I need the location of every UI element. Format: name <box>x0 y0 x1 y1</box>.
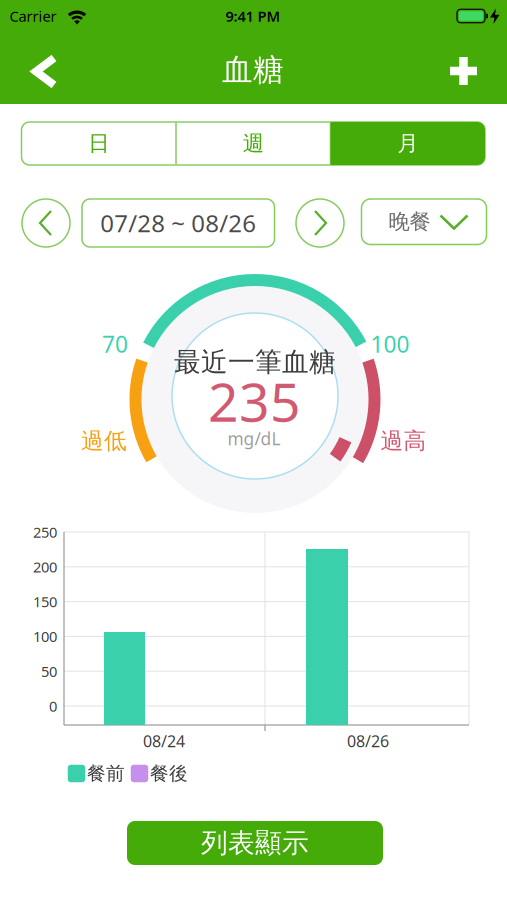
button[interactable] <box>22 199 70 247</box>
button[interactable] <box>450 57 477 85</box>
staticText: 235 <box>208 366 301 436</box>
staticText: 過高 <box>380 427 426 455</box>
staticText: 100 <box>370 329 409 359</box>
staticText: 50 <box>41 661 57 681</box>
button[interactable]: 月 <box>330 122 485 165</box>
button[interactable]: 晚餐 <box>361 199 486 244</box>
staticText: 200 <box>33 557 57 577</box>
button[interactable] <box>296 199 344 247</box>
button[interactable]: 07/28 ~ 08/26 <box>82 199 274 247</box>
staticText: 250 <box>33 522 57 542</box>
staticText: 餐後 <box>150 762 188 785</box>
staticText: 07/28 ~ 08/26 <box>100 207 256 239</box>
staticText: 過低 <box>81 427 127 455</box>
staticText: mg/dL <box>227 427 280 450</box>
staticText: 最近一筆血糖 <box>174 346 336 378</box>
staticText: 血糖 <box>222 51 284 89</box>
button[interactable] <box>33 55 59 88</box>
staticText: 100 <box>33 627 57 646</box>
staticText: 月 <box>397 130 418 157</box>
staticText: 列表顯示 <box>201 827 309 859</box>
staticText: 150 <box>33 592 57 611</box>
staticText: 70 <box>102 329 128 359</box>
staticText: Carrier <box>9 6 56 26</box>
button[interactable]: 週 <box>176 122 330 165</box>
staticText: 08/24 <box>143 730 185 752</box>
staticText: 0 <box>49 696 57 716</box>
button[interactable]: 列表顯示 <box>127 821 383 865</box>
staticText: 週 <box>243 130 264 157</box>
staticText: 9:41 PM <box>225 6 280 26</box>
staticText: 晚餐 <box>388 209 430 235</box>
staticText: 08/26 <box>347 730 389 752</box>
staticText: 日 <box>88 130 109 157</box>
staticText: 餐前 <box>87 762 125 785</box>
button[interactable]: 日 <box>22 122 176 165</box>
